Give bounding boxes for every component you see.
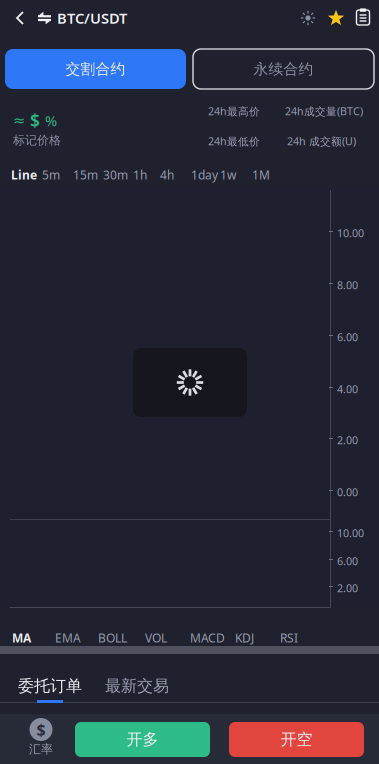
staticText: $: [30, 109, 40, 132]
button[interactable]: 1w: [215, 163, 241, 187]
staticText: 1day: [191, 167, 218, 183]
button[interactable]: 1h: [128, 163, 152, 187]
staticText: Line: [11, 167, 37, 183]
staticText: 1w: [220, 167, 236, 183]
staticText: 委托订单: [18, 676, 82, 696]
staticText: ≈: [13, 112, 25, 129]
staticText: 1M: [252, 167, 270, 183]
staticText: 24h最低价: [208, 134, 260, 148]
button[interactable]: 4h: [155, 163, 179, 187]
staticText: 24h最高价: [208, 104, 260, 118]
button[interactable]: Back: [6, 3, 34, 33]
staticText: 4h: [160, 167, 174, 183]
staticText: 2.00: [337, 433, 358, 447]
button[interactable]: RSI: [273, 626, 305, 650]
staticText: BOLL: [98, 630, 127, 646]
staticText: BTC/USDT: [57, 8, 127, 28]
button[interactable]: 开多: [75, 722, 210, 757]
staticText: 6.00: [337, 330, 358, 344]
button[interactable]: 交割合约: [5, 49, 186, 89]
button[interactable]: MACD: [183, 626, 232, 650]
button[interactable]: BTC/USDT: [38, 3, 127, 33]
staticText: 24h 成交额(U): [287, 134, 356, 148]
staticText: 4.00: [337, 382, 358, 396]
button[interactable]: Theme: [294, 3, 322, 33]
button[interactable]: 永续合约: [193, 49, 374, 89]
button[interactable]: 1M: [247, 163, 275, 187]
staticText: KDJ: [235, 630, 254, 646]
staticText: 1h: [133, 167, 147, 183]
button[interactable]: 1day: [186, 163, 223, 187]
staticText: 15m: [73, 167, 98, 183]
staticText: 8.00: [337, 278, 358, 292]
staticText: RSI: [280, 630, 298, 646]
button[interactable]: 委托订单: [12, 673, 88, 699]
button[interactable]: VOL: [138, 626, 174, 650]
staticText: %: [45, 111, 57, 130]
staticText: 汇率: [29, 742, 53, 757]
button[interactable]: 15m: [68, 163, 103, 187]
button[interactable]: MA: [5, 626, 38, 650]
button[interactable]: KDJ: [228, 626, 261, 650]
staticText: $: [36, 719, 45, 740]
staticText: 开空: [280, 730, 312, 749]
staticText: MACD: [190, 630, 225, 646]
button[interactable]: 5m: [37, 163, 65, 187]
button[interactable]: $: [17, 718, 65, 757]
staticText: EMA: [55, 630, 81, 646]
staticText: 标记价格: [13, 133, 61, 148]
staticText: 2.00: [337, 581, 358, 595]
staticText: 开多: [126, 730, 158, 749]
staticText: 最新交易: [105, 676, 169, 696]
staticText: 永续合约: [253, 60, 313, 78]
button[interactable]: EMA: [48, 626, 88, 650]
button[interactable]: Favorite: [322, 3, 350, 33]
staticText: 0.00: [337, 485, 358, 499]
staticText: MA: [12, 630, 31, 646]
staticText: 6.00: [337, 554, 358, 568]
button[interactable]: BOLL: [91, 626, 134, 650]
button[interactable]: 30m: [98, 163, 133, 187]
staticText: 交割合约: [65, 60, 125, 78]
button[interactable]: 开空: [229, 722, 364, 757]
staticText: 24h成交量(BTC): [285, 104, 363, 118]
staticText: 5m: [42, 167, 60, 183]
button[interactable]: Line: [6, 163, 42, 187]
staticText: 30m: [103, 167, 128, 183]
staticText: 10.00: [337, 226, 364, 240]
staticText: VOL: [145, 630, 167, 646]
button[interactable]: 最新交易: [99, 673, 175, 699]
button[interactable]: Order book: [350, 2, 376, 33]
staticText: 10.00: [337, 526, 364, 540]
